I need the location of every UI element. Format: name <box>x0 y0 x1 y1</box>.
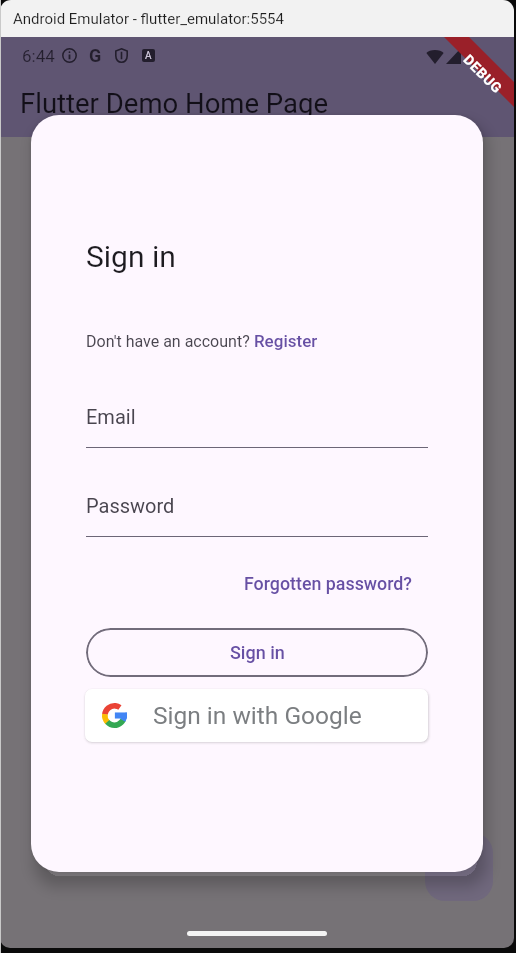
staticText: 6:44 <box>22 46 55 66</box>
staticText: Register <box>254 331 318 351</box>
staticText: Sign in <box>230 642 285 663</box>
staticText: Sign in with Google <box>153 701 362 730</box>
staticText: DEBUG <box>460 51 506 97</box>
button[interactable]: Sign in with Google <box>85 689 428 742</box>
button[interactable]: Password <box>86 494 428 537</box>
staticText: Android Emulator - flutter_emulator:5554 <box>13 10 284 28</box>
button[interactable]: Register <box>254 331 318 351</box>
staticText: Sign in <box>86 239 176 274</box>
staticText: A <box>145 50 152 62</box>
button[interactable]: Forgotten password? <box>86 573 412 594</box>
staticText: G <box>89 45 102 66</box>
staticText: Flutter Demo Home Page <box>20 87 329 119</box>
button[interactable]: Email <box>86 405 428 448</box>
staticText: Password <box>86 494 175 517</box>
staticText: Don't have an account? <box>86 332 254 351</box>
button[interactable]: Add <box>425 833 493 901</box>
staticText: Forgotten password? <box>244 573 412 594</box>
button[interactable]: Sign in <box>86 628 428 677</box>
staticText: Email <box>86 405 136 428</box>
